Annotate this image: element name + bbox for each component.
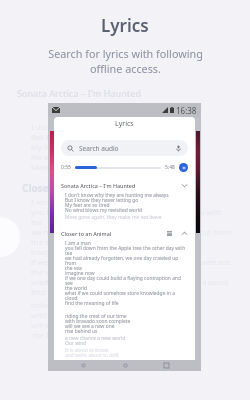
staticText: Lyrics bbox=[115, 119, 134, 129]
staticText: riding the crest of our time with bravad… bbox=[31, 300, 136, 340]
staticText: 16:38 bbox=[176, 105, 197, 116]
staticText: Closer to an Animal bbox=[61, 230, 112, 237]
button[interactable]: Closer to an Animal bbox=[61, 230, 188, 237]
staticText: I don't know why they are hunting me alw… bbox=[31, 122, 197, 172]
staticText: I don't know why they are hunting me alw… bbox=[65, 192, 169, 214]
staticText: riding the crest of our time with bravad… bbox=[65, 313, 131, 335]
staticText: It is about to break and we're about to … bbox=[65, 347, 120, 359]
staticText: 0:55 bbox=[61, 164, 71, 171]
staticText: 5:48 bbox=[165, 164, 175, 171]
button[interactable]: Search audio bbox=[61, 140, 188, 156]
staticText: More gone again, they make me not leave bbox=[65, 214, 162, 221]
staticText: Search audio bbox=[79, 144, 119, 153]
staticText: Lyrics bbox=[101, 14, 149, 37]
button[interactable]: Sonata Arctica – I'm Haunted bbox=[61, 182, 188, 189]
button[interactable]: Back bbox=[76, 360, 90, 371]
button[interactable]: Pause bbox=[179, 163, 188, 172]
staticText: a new chance a new world Our wind bbox=[65, 335, 126, 347]
button[interactable]: Home bbox=[118, 360, 132, 371]
staticText: Closer to an Animal bbox=[22, 181, 120, 195]
staticText: Sonata Arctica – I'm Haunted bbox=[17, 87, 142, 99]
button[interactable]: Recents bbox=[159, 360, 173, 371]
staticText: I am a man you fell down from the Apple … bbox=[31, 197, 232, 297]
staticText: Search for lyrics with following offline… bbox=[48, 46, 203, 76]
staticText: Sonata Arctica – I'm Haunted bbox=[61, 182, 136, 189]
staticText: I am a man you fell down from the Apple … bbox=[65, 240, 188, 307]
